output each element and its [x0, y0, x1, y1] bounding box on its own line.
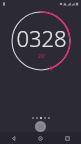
- button[interactable]: Back: [0, 132, 27, 144]
- staticText: 28°: [38, 53, 46, 60]
- staticText: 0328: [16, 23, 67, 53]
- button[interactable]: Recent apps: [54, 132, 81, 144]
- button[interactable]: Apps: [35, 121, 46, 132]
- button[interactable]: Home: [27, 132, 54, 144]
- button[interactable]: 0328: [0, 6, 81, 76]
